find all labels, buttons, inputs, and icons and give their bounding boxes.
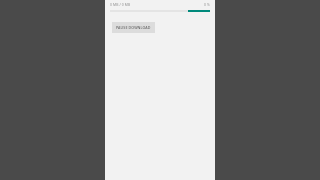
staticText: 0 MB / 0 MB — [110, 2, 131, 7]
staticText: PAUSE DOWNLOAD — [116, 25, 151, 30]
staticText: 0 % — [204, 2, 210, 7]
button[interactable]: PAUSE DOWNLOAD — [112, 22, 155, 33]
